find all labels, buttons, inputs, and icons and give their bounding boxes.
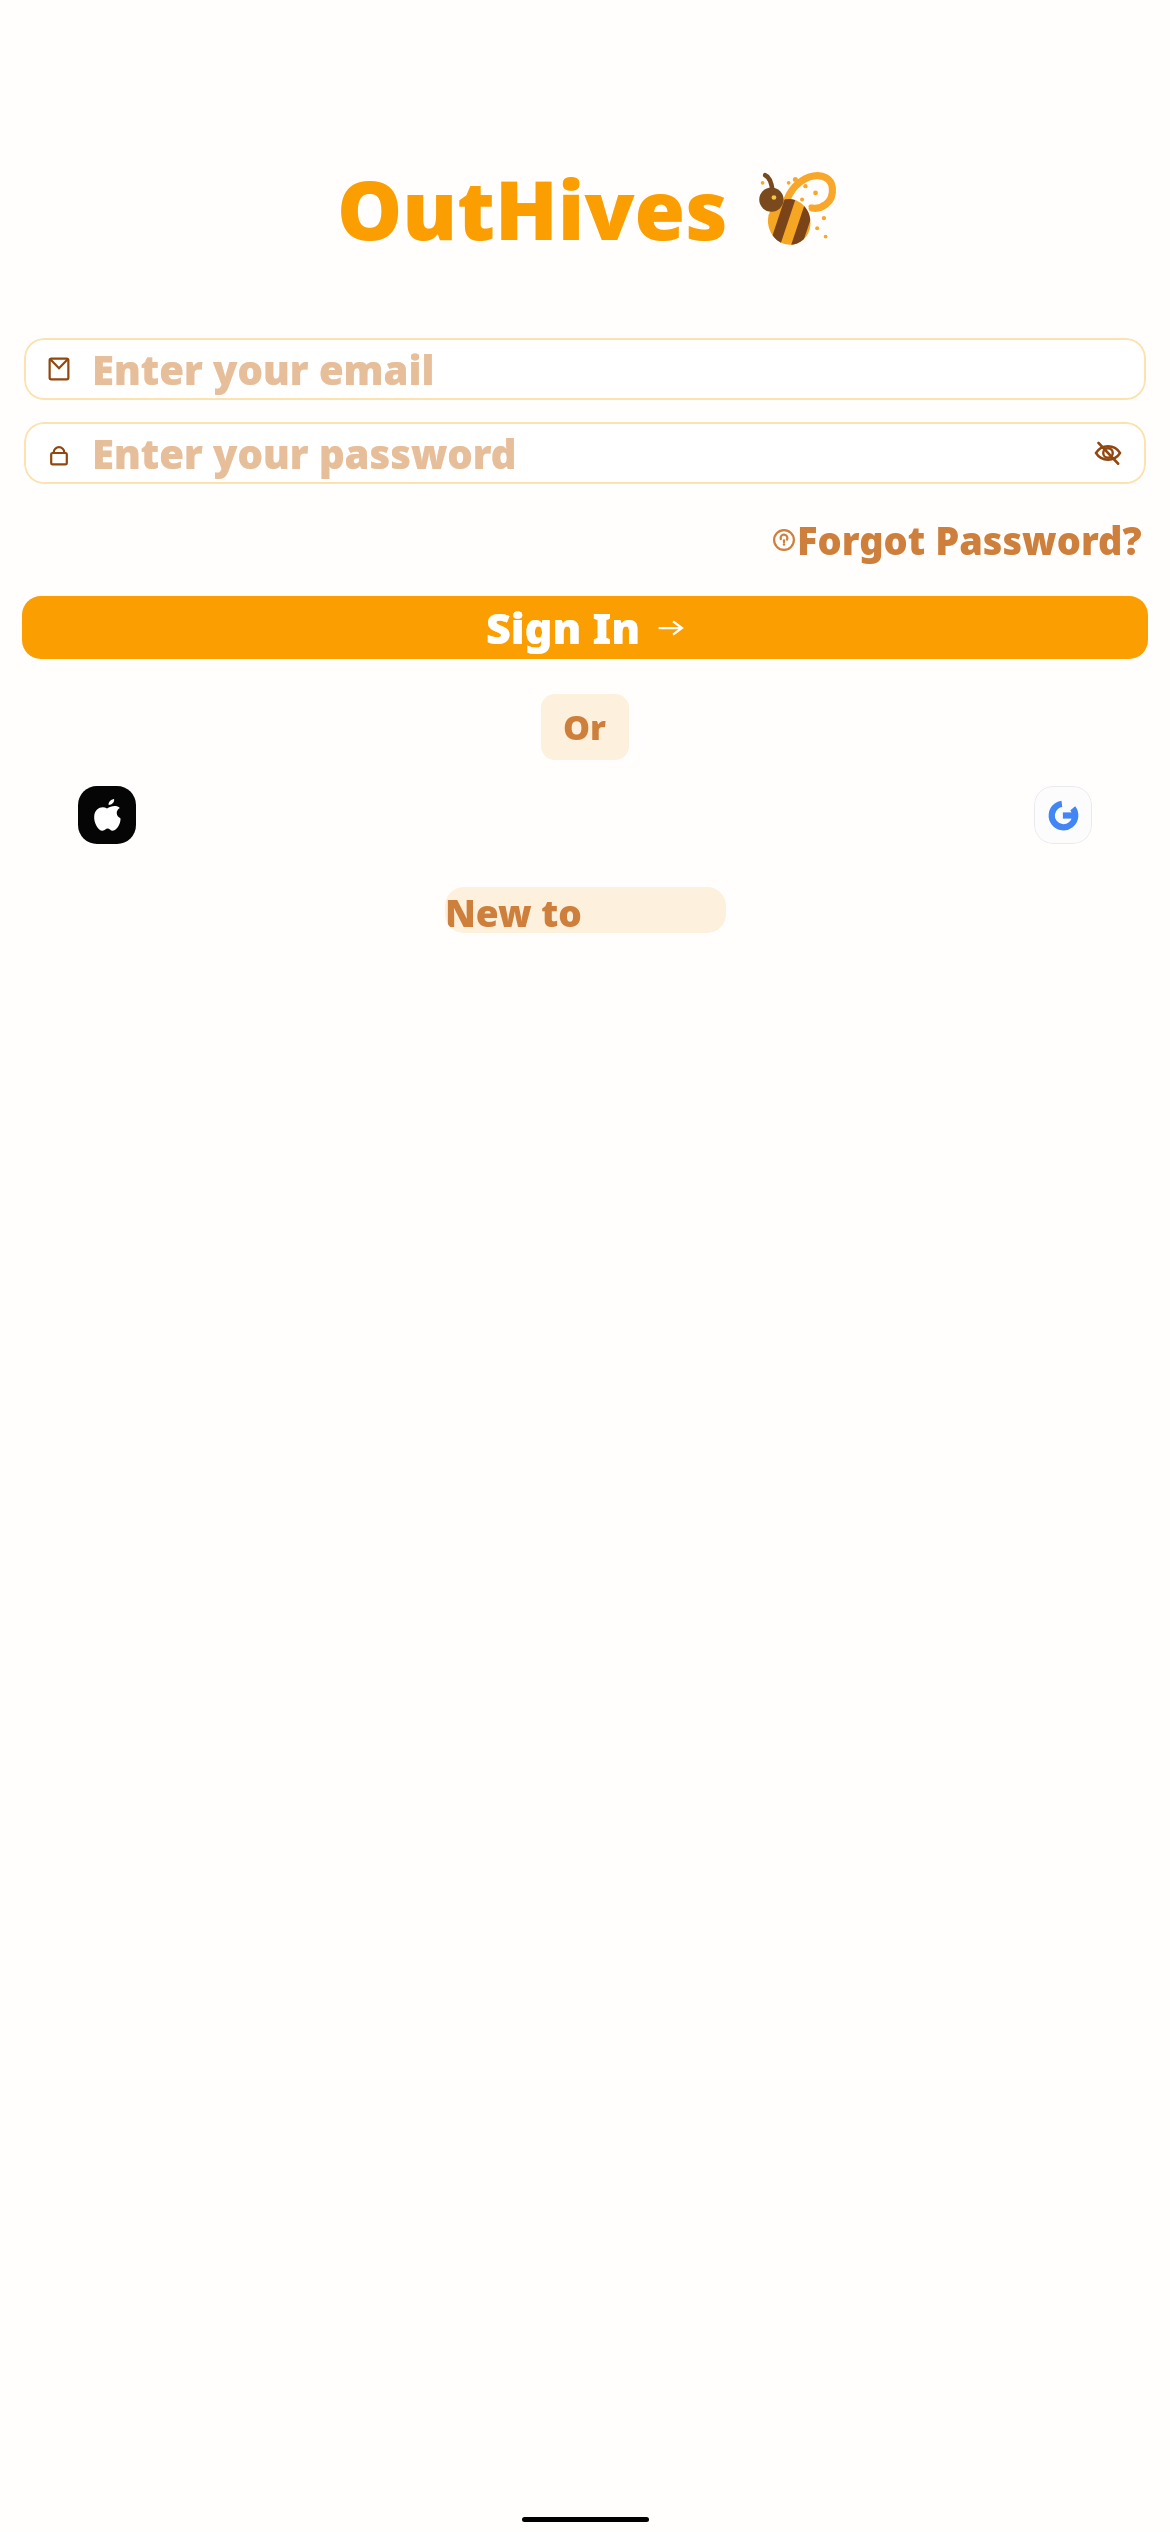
button[interactable]: Sign In: [22, 596, 1148, 659]
staticText: Enter your password: [92, 426, 517, 480]
staticText: OutHives: [337, 152, 728, 264]
button[interactable]: Show password: [1092, 437, 1124, 469]
staticText: Or: [563, 704, 607, 750]
button[interactable]: Forgot Password?: [767, 510, 1146, 570]
staticText: New to OutHives?: [445, 887, 726, 933]
button[interactable]: Sign in with Google: [1034, 786, 1092, 844]
button[interactable]: Sign in with Apple: [78, 786, 136, 844]
button[interactable]: Enter your password: [24, 422, 1146, 484]
staticText: Enter your email: [92, 342, 435, 396]
staticText: Sign In: [486, 598, 641, 657]
button[interactable]: Enter your email: [24, 338, 1146, 400]
button[interactable]: New to OutHives?: [445, 887, 726, 933]
staticText: Forgot Password?: [797, 514, 1142, 566]
